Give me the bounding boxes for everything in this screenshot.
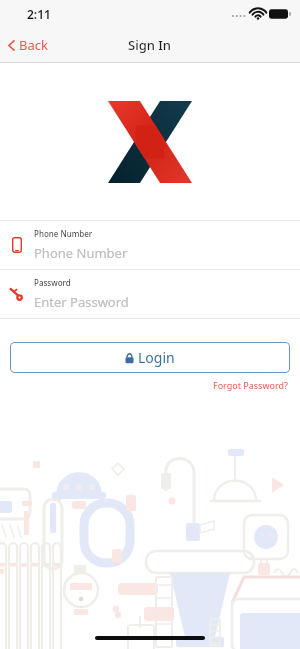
button[interactable]: Forgot Password? — [211, 377, 290, 393]
button[interactable]: Login — [10, 342, 290, 373]
staticText: Enter Password — [34, 293, 129, 311]
staticText: 2:11 — [27, 6, 51, 22]
other: Phone number — [12, 237, 22, 253]
staticText: Phone Number — [34, 244, 128, 262]
staticText: Back — [19, 36, 48, 54]
staticText: Password — [34, 277, 71, 288]
other: Password — [9, 286, 25, 302]
staticText: Login — [138, 348, 175, 367]
button[interactable]: Phone number — [0, 221, 300, 269]
staticText: Phone Number — [34, 228, 93, 239]
button[interactable]: Password — [0, 270, 300, 318]
button[interactable]: Back — [0, 29, 60, 61]
staticText: Sign In — [128, 36, 172, 54]
